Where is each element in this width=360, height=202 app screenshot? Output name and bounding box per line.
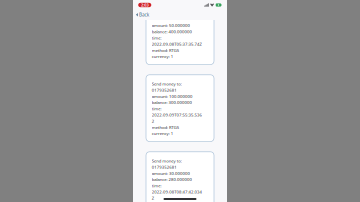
staticText: amount: 100.000000 [67,71,230,93]
staticText: Send money to: [67,21,187,44]
staticText: 0179352681 [67,46,167,69]
staticText: balance: 300.000000 [67,96,228,118]
staticText: 2022-09-09T07:55:35.536 [67,145,268,168]
staticText: method: RTGS [67,195,176,202]
